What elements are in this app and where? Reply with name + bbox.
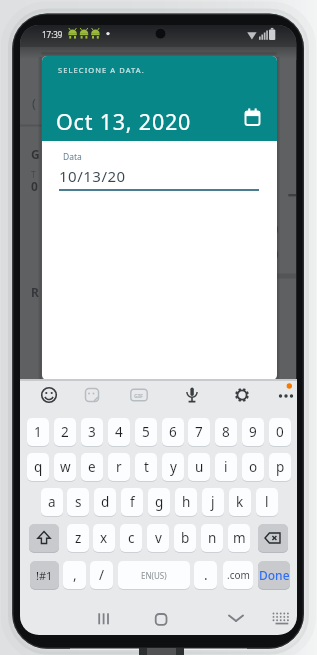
button[interactable]: / xyxy=(90,561,113,589)
button[interactable]: d xyxy=(94,488,116,516)
staticText: 17:39 xyxy=(42,29,63,40)
staticText: / xyxy=(99,566,105,584)
staticText: 6 xyxy=(169,423,177,441)
staticText: k xyxy=(236,493,244,511)
staticText: u xyxy=(195,458,204,476)
button[interactable]: i xyxy=(215,453,237,481)
staticText: v xyxy=(155,529,162,547)
staticText: EN(US) xyxy=(141,570,167,581)
button[interactable]: Done xyxy=(258,561,290,589)
button[interactable] xyxy=(268,607,294,629)
staticText: 0 xyxy=(276,423,284,441)
button[interactable]: .com xyxy=(223,561,253,589)
staticText: 5 xyxy=(142,423,150,441)
staticText: g xyxy=(155,493,164,511)
button[interactable]: w xyxy=(54,453,76,481)
staticText: m xyxy=(233,529,246,547)
staticText: ) xyxy=(275,220,279,236)
button[interactable] xyxy=(276,385,296,405)
button[interactable]: 3 xyxy=(81,418,103,446)
button[interactable]: y xyxy=(162,453,184,481)
button[interactable]: 2 xyxy=(54,418,76,446)
staticText: 1 xyxy=(34,423,42,441)
button[interactable]: 8 xyxy=(215,418,237,446)
staticText: 2 xyxy=(61,423,69,441)
button[interactable]: !#1 xyxy=(30,561,59,589)
staticText: GIF xyxy=(134,392,144,399)
staticText: Data xyxy=(63,151,82,163)
button[interactable]: 4 xyxy=(108,418,130,446)
staticText: . xyxy=(204,566,208,584)
staticText: s xyxy=(75,493,82,511)
button[interactable] xyxy=(232,385,252,405)
staticText: 9 xyxy=(249,423,257,441)
button[interactable]: o xyxy=(242,453,264,481)
staticText: t xyxy=(144,458,149,476)
button[interactable]: 5 xyxy=(135,418,157,446)
staticText: e xyxy=(88,458,96,476)
staticText: n xyxy=(208,529,217,547)
button[interactable] xyxy=(90,607,118,629)
staticText: ) xyxy=(275,245,279,261)
staticText: o xyxy=(249,458,258,476)
staticText: G xyxy=(31,146,40,162)
button[interactable]: h xyxy=(175,488,197,516)
staticText: Oct 13, 2020 xyxy=(56,107,192,136)
staticText: h xyxy=(182,493,191,511)
button[interactable]: u xyxy=(188,453,210,481)
staticText: z xyxy=(75,529,82,547)
button[interactable]: f xyxy=(121,488,143,516)
button[interactable] xyxy=(258,524,288,552)
staticText: .com xyxy=(227,568,250,582)
button[interactable]: q xyxy=(27,453,49,481)
staticText: 0 xyxy=(31,178,38,194)
staticText: !#1 xyxy=(36,568,53,583)
button[interactable]: GIF xyxy=(129,385,149,405)
button[interactable]: 7 xyxy=(188,418,210,446)
button[interactable] xyxy=(222,607,250,629)
staticText: b xyxy=(181,529,190,547)
button[interactable]: 9 xyxy=(242,418,264,446)
staticText: i xyxy=(224,458,228,476)
staticText: f xyxy=(130,493,135,511)
button[interactable] xyxy=(147,607,175,629)
button[interactable] xyxy=(29,524,59,552)
button[interactable]: z xyxy=(67,524,89,552)
button[interactable]: b xyxy=(174,524,196,552)
staticText: c xyxy=(128,529,135,547)
staticText: 7 xyxy=(195,423,203,441)
staticText: SELECIONE A DATA. xyxy=(58,65,145,75)
button[interactable]: , xyxy=(63,561,86,589)
button[interactable]: 6 xyxy=(162,418,184,446)
button[interactable]: c xyxy=(120,524,142,552)
button[interactable] xyxy=(82,385,102,405)
staticText: 8 xyxy=(222,423,230,441)
button[interactable]: j xyxy=(202,488,224,516)
button[interactable] xyxy=(182,385,202,405)
button[interactable]: s xyxy=(67,488,89,516)
button[interactable]: e xyxy=(81,453,103,481)
button[interactable]: . xyxy=(194,561,217,589)
button[interactable]: l xyxy=(256,488,278,516)
button[interactable]: g xyxy=(148,488,170,516)
button[interactable]: x xyxy=(93,524,115,552)
button[interactable]: 1 xyxy=(27,418,49,446)
staticText: T xyxy=(31,169,36,181)
button[interactable] xyxy=(241,107,265,131)
button[interactable]: m xyxy=(228,524,250,552)
staticText: a xyxy=(48,493,56,511)
button[interactable]: v xyxy=(147,524,169,552)
button[interactable]: p xyxy=(269,453,291,481)
button[interactable]: 0 xyxy=(269,418,291,446)
button[interactable]: EN(US) xyxy=(118,561,190,589)
button[interactable]: k xyxy=(229,488,251,516)
staticText: 3 xyxy=(88,423,96,441)
staticText: w xyxy=(60,458,71,476)
button[interactable]: t xyxy=(135,453,157,481)
staticText: d xyxy=(101,493,110,511)
button[interactable]: n xyxy=(201,524,223,552)
button[interactable]: a xyxy=(41,488,63,516)
button[interactable] xyxy=(39,385,59,405)
button[interactable]: r xyxy=(108,453,130,481)
button[interactable] xyxy=(48,145,271,192)
